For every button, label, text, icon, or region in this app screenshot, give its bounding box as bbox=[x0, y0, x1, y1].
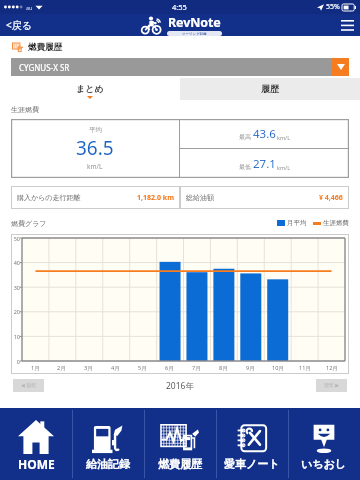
staticText: 1月 bbox=[31, 364, 40, 372]
staticText: 平均 bbox=[89, 126, 102, 134]
button[interactable]: <戻る bbox=[4, 14, 34, 36]
staticText: 履歴 bbox=[261, 83, 279, 94]
staticText: 翌年 ▶ bbox=[324, 382, 340, 389]
staticText: km/L bbox=[87, 162, 103, 171]
staticText: km/L bbox=[277, 134, 291, 141]
staticText: 2016年 bbox=[166, 380, 194, 392]
staticText: ツーリング記録 bbox=[182, 32, 207, 36]
button[interactable]: まとめ bbox=[0, 78, 180, 100]
staticText: 愛車ノート bbox=[224, 457, 280, 471]
staticText: 2月 bbox=[57, 364, 66, 372]
staticText: 12月 bbox=[326, 364, 338, 372]
button[interactable]: 履歴 bbox=[180, 78, 360, 100]
button[interactable]: ◀ 前年 bbox=[13, 379, 44, 392]
staticText: 40 bbox=[13, 259, 20, 266]
staticText: 購入からの走行距離 bbox=[17, 193, 81, 202]
staticText: 4月 bbox=[111, 364, 120, 372]
staticText: 月平均 bbox=[287, 219, 307, 227]
staticText: 9月 bbox=[246, 364, 255, 372]
staticText: 10 bbox=[13, 333, 20, 340]
button[interactable]: いちおし bbox=[288, 408, 360, 480]
staticText: 最高 bbox=[239, 133, 251, 141]
staticText: 20 bbox=[13, 308, 20, 315]
staticText: まとめ bbox=[76, 83, 104, 94]
staticText: 給油記録 bbox=[86, 457, 130, 471]
staticText: 36.5 bbox=[76, 135, 114, 161]
staticText: CYGNUS-X SR bbox=[19, 62, 70, 73]
staticText: 27.1 bbox=[253, 156, 276, 172]
staticText: 0 bbox=[16, 358, 20, 365]
staticText: 11月 bbox=[299, 364, 311, 372]
staticText: 1,182.0 km bbox=[137, 193, 174, 203]
staticText: 7月 bbox=[192, 364, 201, 372]
staticText: 5月 bbox=[138, 364, 147, 372]
staticText: 4:55 bbox=[172, 2, 187, 12]
staticText: 燃費履歴 bbox=[158, 457, 202, 471]
button[interactable]: 給油記録 bbox=[72, 408, 144, 480]
staticText: 燃費履歴 bbox=[28, 42, 62, 53]
staticText: 燃費グラフ bbox=[11, 219, 47, 228]
button[interactable]: CYGNUS-X SR bbox=[11, 58, 349, 76]
staticText: km/L bbox=[277, 164, 291, 171]
staticText: ◀ 前年 bbox=[21, 382, 37, 389]
staticText: RevNote bbox=[168, 14, 221, 31]
staticText: 3月 bbox=[84, 364, 93, 372]
staticText: <戻る bbox=[6, 18, 32, 32]
staticText: 50 bbox=[13, 235, 20, 242]
staticText: いちおし bbox=[301, 457, 347, 471]
staticText: 総給油額 bbox=[186, 193, 214, 202]
staticText: 6月 bbox=[165, 364, 174, 372]
other: Select vehicle bbox=[332, 58, 349, 76]
staticText: 生涯燃費 bbox=[11, 105, 39, 114]
button[interactable]: 愛車ノート bbox=[216, 408, 288, 480]
staticText: 10月 bbox=[272, 364, 284, 372]
staticText: 43.6 bbox=[253, 126, 276, 142]
staticText: 8月 bbox=[219, 364, 228, 372]
staticText: 生涯燃費 bbox=[323, 219, 349, 227]
staticText: 最低 bbox=[239, 163, 251, 171]
staticText: ¥ 4,466 bbox=[319, 193, 343, 203]
staticText: 30 bbox=[13, 284, 20, 291]
button[interactable]: Menu bbox=[334, 14, 360, 36]
staticText: HOME bbox=[18, 456, 55, 472]
button[interactable]: HOME bbox=[0, 408, 72, 480]
staticText: 55% bbox=[326, 2, 340, 12]
staticText: au bbox=[26, 4, 33, 11]
button[interactable]: 燃費履歴 bbox=[144, 408, 216, 480]
button[interactable]: 翌年 ▶ bbox=[316, 379, 347, 392]
